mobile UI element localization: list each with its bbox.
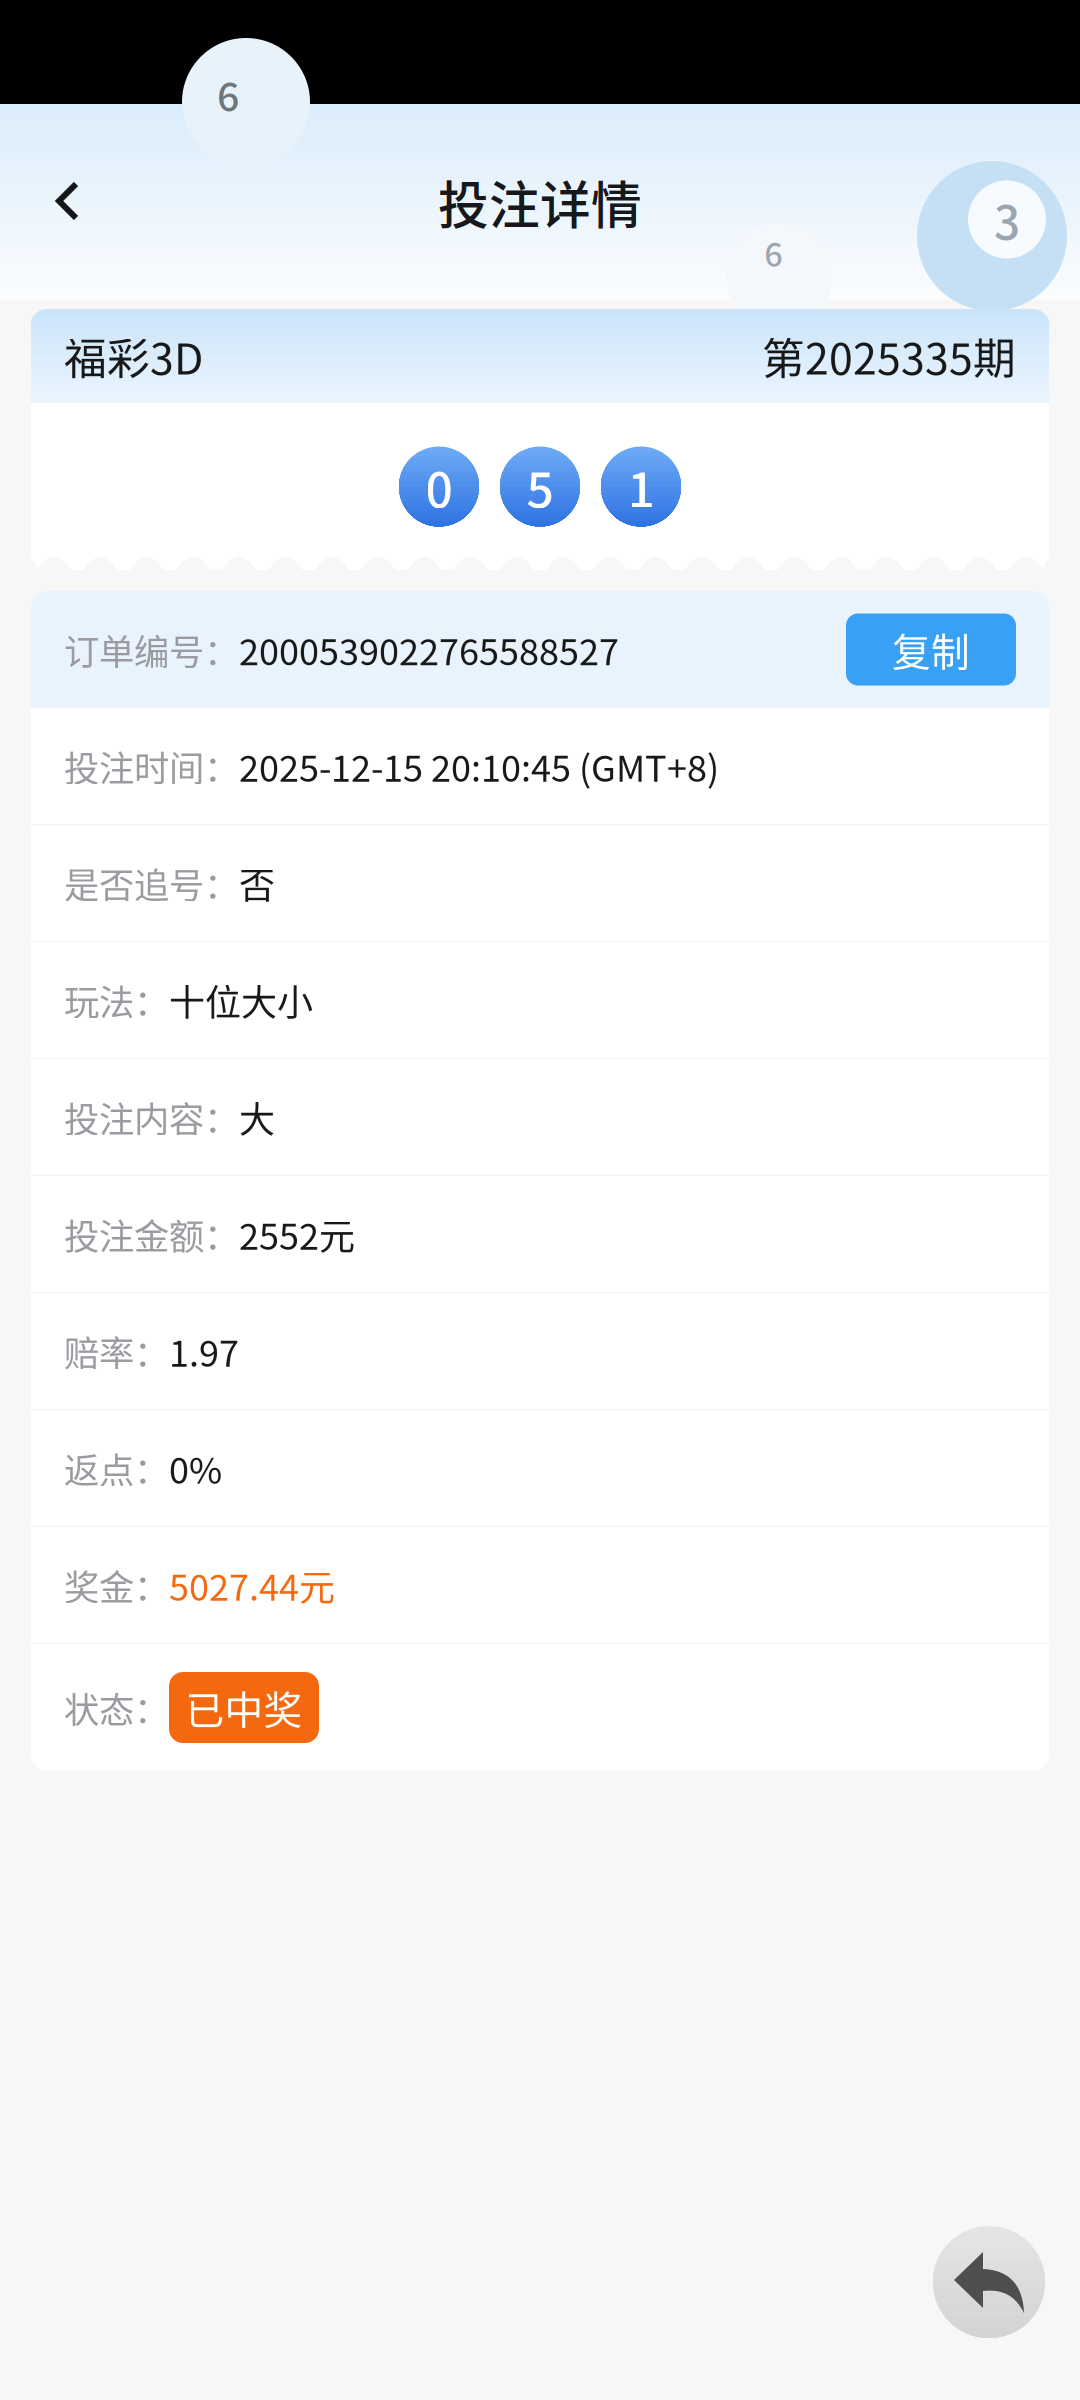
staticText: 大 [239,1091,275,1143]
staticText: 3 [994,186,1020,253]
staticText: 第2025335期 [762,325,1016,387]
staticText: 2000539022765588527 [239,623,619,675]
staticText: 订单编号： [64,624,239,675]
staticText: 6 [217,66,239,123]
staticText: 否 [239,857,275,909]
staticText: 0 [425,452,452,521]
staticText: 十位大小 [169,974,313,1026]
staticText: 6 [764,229,783,276]
staticText: 5027.44元 [169,1559,335,1611]
staticText: 5 [526,452,553,521]
staticText: 赔率： [64,1325,169,1377]
staticText: 0% [169,1442,222,1494]
staticText: 状态： [64,1682,169,1733]
staticText: 奖金： [64,1559,169,1611]
staticText: 玩法： [64,974,169,1026]
staticText: 福彩3D [64,325,203,387]
staticText: 1 [627,452,654,521]
staticText: 已中奖 [185,1679,302,1735]
staticText: 1.97 [169,1325,239,1377]
staticText: 投注内容： [64,1091,239,1143]
button[interactable]: Back [933,2226,1045,2338]
button[interactable]: 复制 [846,613,1016,685]
staticText: 是否追号： [64,857,239,909]
staticText: 投注金额： [64,1208,239,1260]
staticText: 投注时间： [64,740,239,792]
staticText: 返点： [64,1442,169,1494]
staticText: 2025-12-15 20:10:45 (GMT+8) [239,740,719,792]
staticText: 2552元 [239,1208,355,1260]
button[interactable]: Back [16,150,120,254]
staticText: 复制 [892,621,970,677]
staticText: 投注详情 [438,165,642,239]
